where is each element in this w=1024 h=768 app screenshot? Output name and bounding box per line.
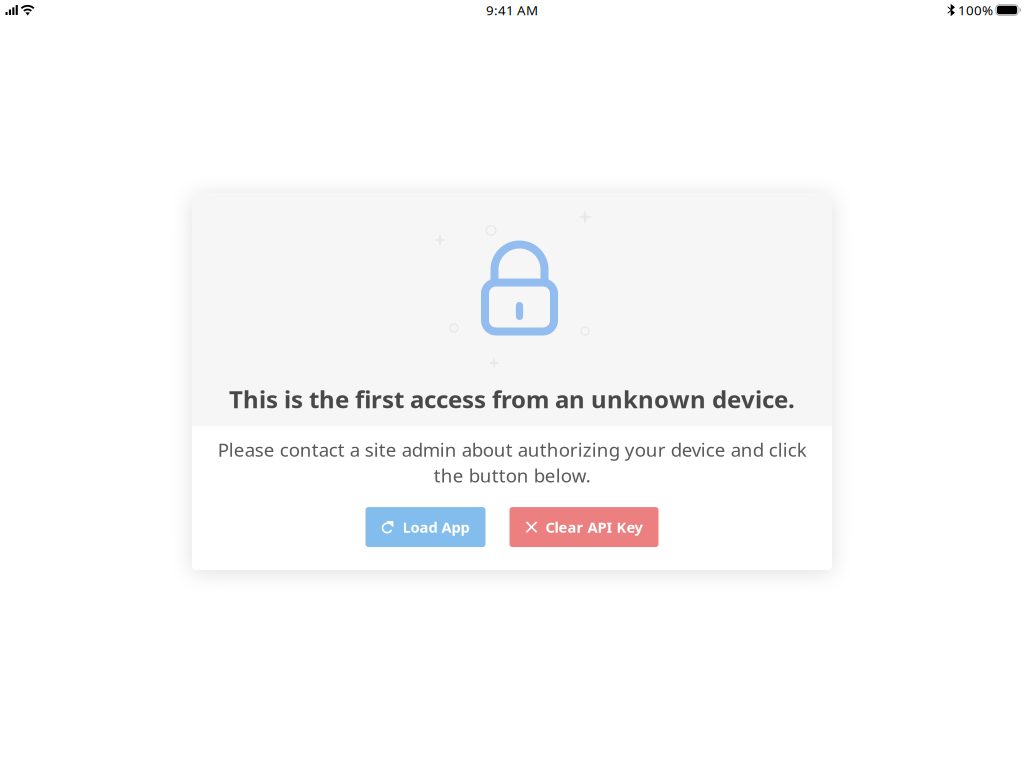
button[interactable]: Load App — [365, 507, 485, 547]
staticText: This is the first access from an unknown… — [229, 383, 795, 415]
button[interactable]: Clear API Key — [509, 507, 658, 547]
staticText: 9:41 AM — [486, 1, 538, 19]
staticText: Load App — [402, 517, 469, 537]
staticText: Clear API Key — [545, 517, 642, 537]
staticText: Please contact a site admin about author… — [217, 437, 806, 488]
staticText: 100% — [958, 1, 993, 19]
